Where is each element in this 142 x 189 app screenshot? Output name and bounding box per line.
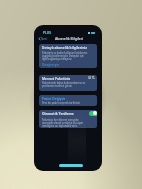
button[interactable]: Otomatik Yenileme	[39, 110, 97, 128]
staticText: Geri	[41, 37, 48, 41]
staticText: Yeni bir paket seçerek tarifenizi	[42, 101, 80, 105]
button[interactable]: Otomatik Yenileme	[89, 111, 97, 116]
staticText: Mevcut Paketiniz	[42, 76, 71, 80]
staticText: aşağıda listelenmiştir. Detaylar için	[42, 54, 84, 58]
staticText: Abonelik Bilgileri	[55, 36, 84, 41]
button[interactable]: Mevcut Paketiniz	[39, 75, 97, 91]
staticText: PLUS	[43, 31, 51, 35]
staticText: ilgili bağlantıya tıklayınız	[42, 57, 72, 61]
button[interactable]: Back	[38, 36, 50, 41]
staticText: Detaylı abonelik bilgileriniz	[42, 45, 87, 49]
staticText: otomatik olarak yenilenir. Bu ayarı	[42, 121, 84, 125]
staticText: Otomatik Yenileme	[42, 111, 74, 115]
staticText: Paketinizde kalan kullanımlarınız ve	[42, 81, 86, 85]
button[interactable]: Detaylı abonelik bilgileriniz	[39, 44, 97, 68]
button[interactable]: Paket Değiştir	[39, 95, 97, 106]
staticText: Paketiniz her dönem sonunda	[42, 118, 79, 122]
staticText: Paket Değiştir	[42, 96, 66, 100]
staticText: Detayları gör	[42, 63, 60, 67]
staticText: istediğiniz an kapatabilirsiniz	[42, 124, 78, 128]
staticText: 32 TL	[88, 76, 95, 80]
staticText: Paketiniz ve kalan kullanım haklarınız	[42, 51, 88, 55]
staticText: yenilenme tarihini görün	[42, 84, 73, 88]
